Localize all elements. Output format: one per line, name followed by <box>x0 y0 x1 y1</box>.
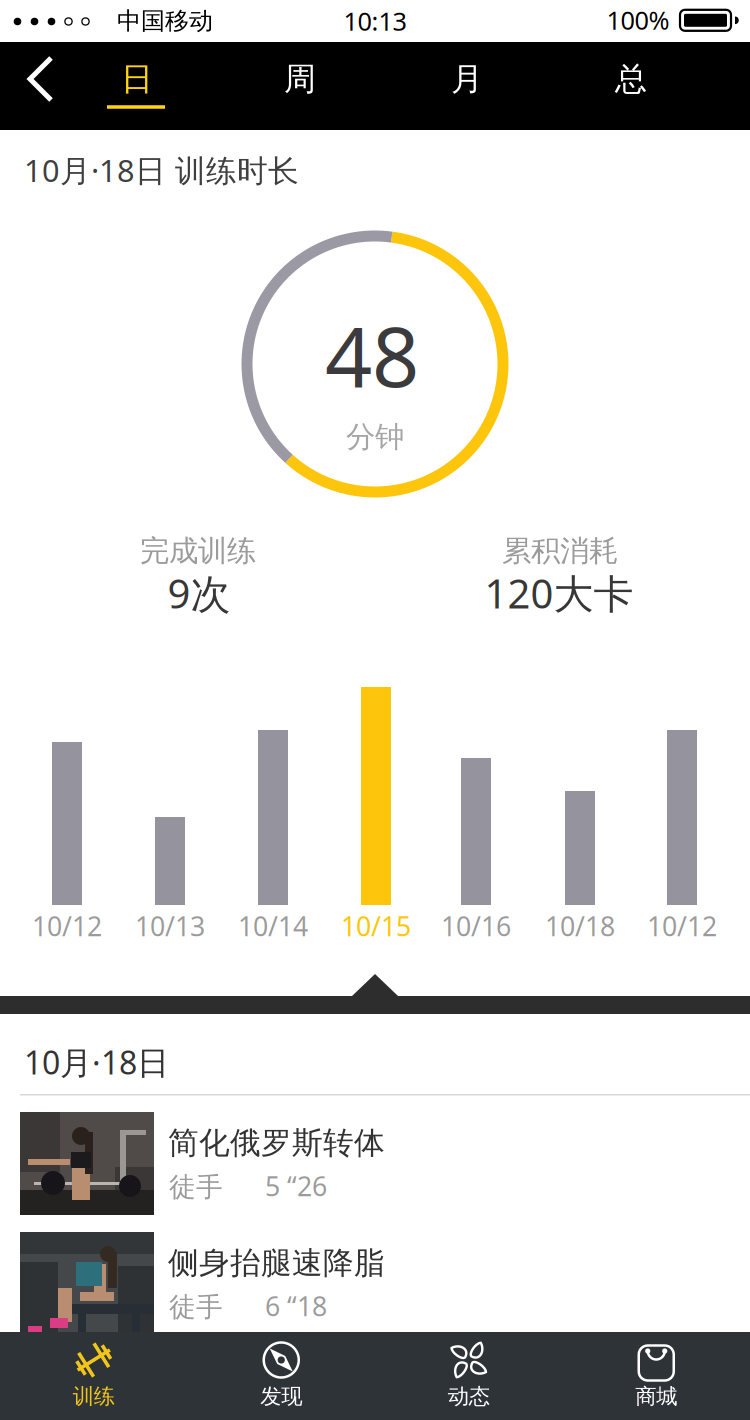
staticText: 商城 <box>635 1383 677 1410</box>
staticText: 10/14 <box>238 908 308 944</box>
staticText: 完成训练 <box>140 533 256 569</box>
staticText: 总 <box>615 59 647 99</box>
staticText: 中国移动 <box>117 6 213 36</box>
staticText: 徒手 6 “18 <box>169 1288 327 1324</box>
staticText: 48 <box>325 300 419 410</box>
staticText: 徒手 5 “26 <box>169 1168 327 1204</box>
button[interactable]: 简化俄罗斯转体 <box>0 1112 750 1215</box>
button[interactable]: 商城 <box>562 1332 750 1420</box>
button[interactable]: Back <box>0 42 80 116</box>
staticText: 100% <box>606 3 669 37</box>
staticText: 10/13 <box>135 908 205 944</box>
staticText: 10/18 <box>545 908 615 944</box>
staticText: 10月·18日 <box>24 1041 169 1083</box>
staticText: 训练 <box>73 1383 115 1410</box>
button[interactable]: 侧身抬腿速降脂 <box>0 1232 750 1335</box>
button[interactable]: 月 <box>402 35 532 123</box>
staticText: 发现 <box>260 1383 302 1410</box>
staticText: 10/16 <box>441 908 511 944</box>
staticText: 累积消耗 <box>502 533 618 569</box>
button[interactable]: 动态 <box>375 1332 562 1420</box>
staticText: 120大卡 <box>484 566 633 619</box>
button[interactable]: 发现 <box>187 1332 375 1420</box>
staticText: 10月·18日 训练时长 <box>24 150 299 190</box>
staticText: 周 <box>284 59 316 99</box>
button[interactable]: 日 <box>72 35 202 123</box>
button[interactable]: 周 <box>235 35 365 123</box>
button[interactable]: 训练 <box>0 1332 187 1420</box>
staticText: 日 <box>121 59 153 99</box>
staticText: 9次 <box>167 566 230 619</box>
staticText: 动态 <box>448 1383 490 1410</box>
staticText: 10/12 <box>647 908 717 944</box>
staticText: 月 <box>451 59 483 99</box>
button[interactable]: 总 <box>566 35 696 123</box>
staticText: 分钟 <box>346 419 404 455</box>
staticText: 10:13 <box>343 4 406 38</box>
staticText: 10/12 <box>32 908 102 944</box>
staticText: 简化俄罗斯转体 <box>168 1124 385 1162</box>
staticText: 侧身抬腿速降脂 <box>168 1244 385 1282</box>
staticText: 10/15 <box>341 908 411 944</box>
